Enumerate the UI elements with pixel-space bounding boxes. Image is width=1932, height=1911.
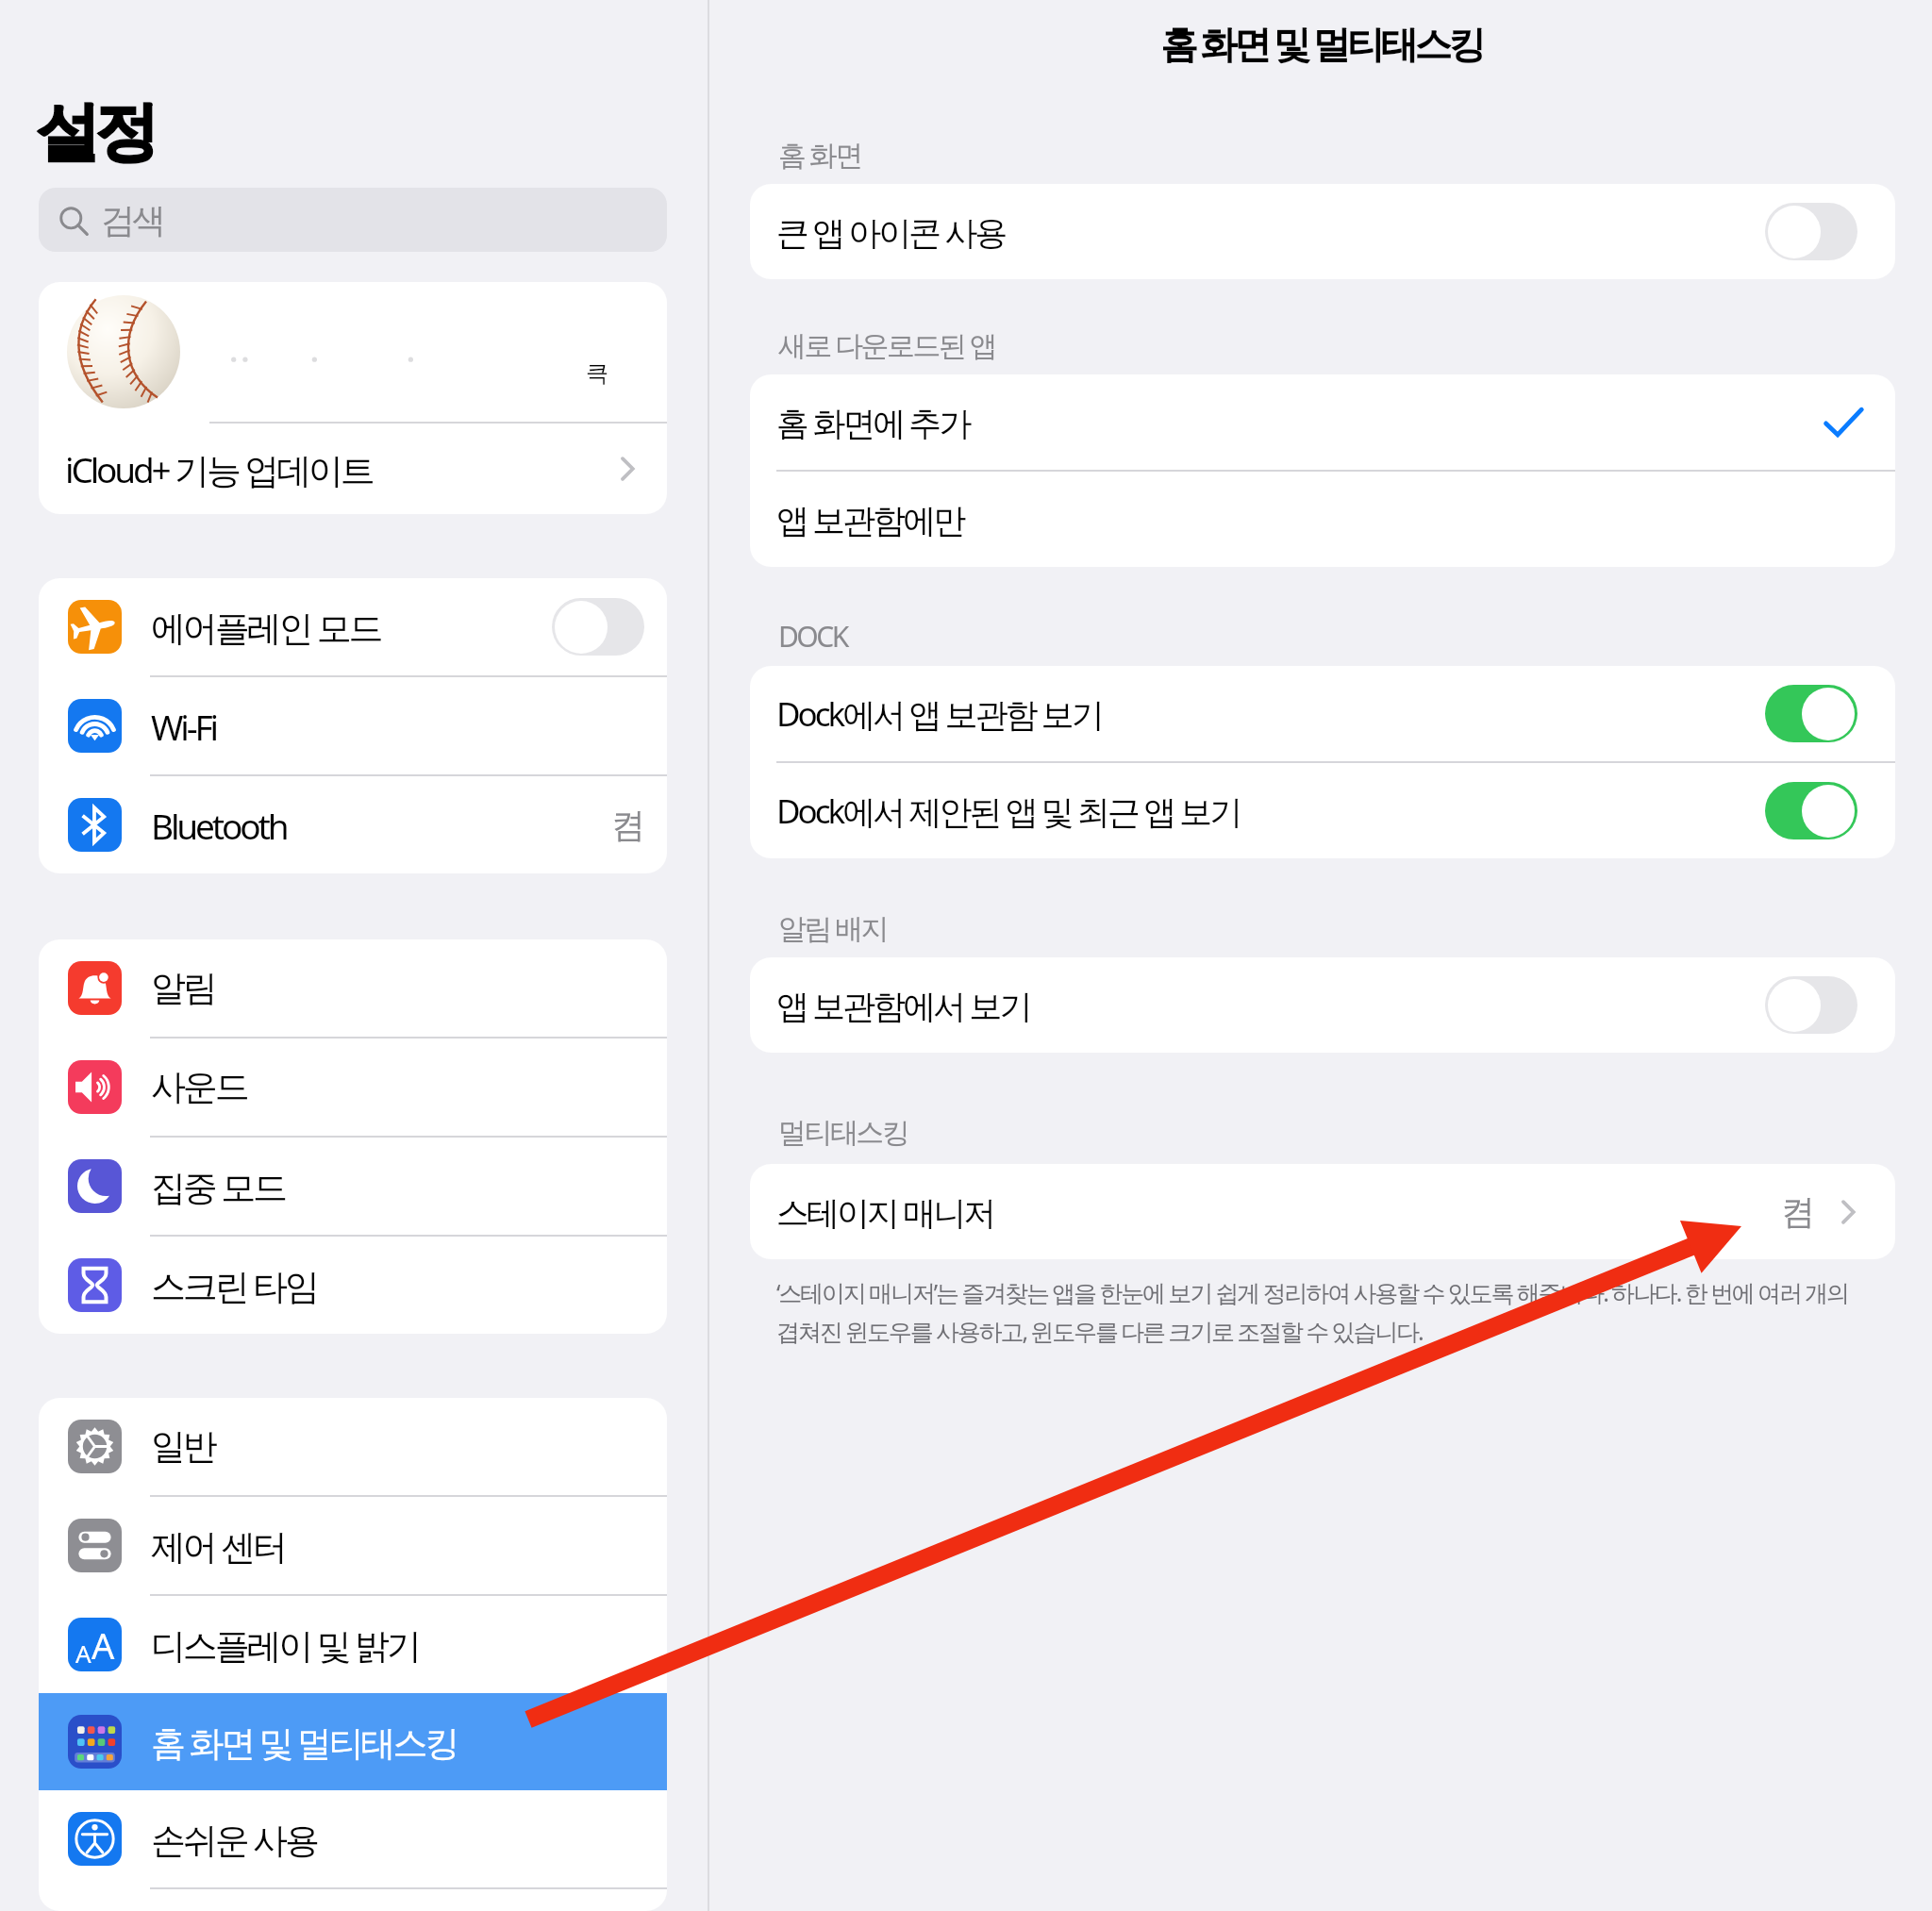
button[interactable]: 홈 화면 및 멀티태스킹 bbox=[39, 1693, 667, 1790]
staticText: 큰 앱 아이콘 사용 bbox=[776, 209, 1006, 255]
button[interactable]: 검색 bbox=[39, 188, 667, 252]
staticText: 앱 보관함에만 bbox=[776, 497, 964, 542]
button[interactable]: 일반 bbox=[39, 1398, 667, 1495]
button[interactable]: 손쉬운 사용 bbox=[39, 1790, 667, 1887]
staticText: 에어플레인 모드 bbox=[151, 603, 381, 651]
button[interactable]: Toggle off bbox=[552, 598, 644, 656]
staticText: 스테이지 매니저 bbox=[776, 1189, 994, 1235]
staticText: 사운드 bbox=[151, 1065, 247, 1109]
button[interactable]: Dock에서 앱 보관함 보기 bbox=[750, 666, 1895, 761]
staticText: iCloud+ 기능 업데이트 bbox=[65, 445, 373, 493]
button[interactable]: 큭 bbox=[39, 282, 667, 422]
staticText: Wi-Fi bbox=[151, 703, 216, 750]
staticText: 홈 화면에 추가 bbox=[776, 400, 970, 445]
staticText: 켬 bbox=[611, 804, 642, 846]
staticText: 제어 센터 bbox=[151, 1521, 285, 1570]
button[interactable]: 에어플레인 모드 bbox=[39, 578, 667, 675]
staticText: 디스플레이 및 밝기 bbox=[151, 1620, 419, 1669]
staticText: 일반 bbox=[151, 1424, 215, 1469]
staticText: 새로 다운로드된 앱 bbox=[778, 325, 996, 364]
staticText: 알림 bbox=[151, 966, 215, 1010]
button[interactable]: Toggle off bbox=[1765, 976, 1857, 1034]
other: Open bbox=[1831, 1195, 1865, 1229]
staticText: 알림 배지 bbox=[778, 908, 888, 947]
button[interactable]: 큰 앱 아이콘 사용 bbox=[750, 184, 1895, 279]
staticText: 앱 보관함에서 보기 bbox=[776, 983, 1030, 1028]
staticText: DOCK bbox=[778, 617, 847, 656]
button[interactable]: Wi-Fi bbox=[39, 677, 667, 774]
staticText: 홈 화면 및 멀티태스킹 bbox=[151, 1718, 458, 1766]
button[interactable]: Toggle on bbox=[1765, 782, 1857, 839]
staticText: 멀티태스킹 bbox=[778, 1115, 908, 1151]
button[interactable]: 사운드 bbox=[39, 1039, 667, 1136]
button[interactable]: 앱 보관함에서 보기 bbox=[750, 957, 1895, 1053]
staticText: 손쉬운 사용 bbox=[151, 1815, 317, 1863]
button[interactable]: 앱 보관함에만 bbox=[750, 472, 1895, 567]
staticText: 켬 bbox=[1781, 1190, 1812, 1233]
button[interactable]: iCloud+ 기능 업데이트 bbox=[39, 424, 667, 514]
button[interactable]: 알림 bbox=[39, 939, 667, 1037]
button[interactable]: 제어 센터 bbox=[39, 1497, 667, 1594]
staticText: 설정 bbox=[36, 92, 155, 174]
staticText: A bbox=[92, 1620, 115, 1670]
staticText: 홈 화면 bbox=[778, 135, 861, 174]
button[interactable]: Dock에서 제안된 앱 및 최근 앱 보기 bbox=[750, 763, 1895, 858]
button[interactable]: 집중 모드 bbox=[39, 1138, 667, 1235]
button[interactable]: A bbox=[39, 1596, 667, 1693]
button[interactable]: Bluetooth bbox=[39, 776, 667, 873]
staticText: A bbox=[75, 1637, 92, 1670]
staticText: ‘스테이지 매니저’는 즐겨찾는 앱을 한눈에 보기 쉽게 정리하여 사용할 수… bbox=[776, 1276, 1848, 1348]
other: Selected bbox=[1822, 401, 1865, 444]
staticText: 스크린 타임 bbox=[151, 1261, 317, 1309]
staticText: 집중 모드 bbox=[151, 1162, 285, 1210]
staticText: Bluetooth bbox=[151, 802, 287, 849]
staticText: 큭 bbox=[586, 359, 607, 388]
staticText: 검색 bbox=[101, 199, 163, 241]
button[interactable]: 스테이지 매니저 bbox=[750, 1164, 1895, 1259]
other: Open bbox=[610, 452, 644, 486]
button[interactable]: Toggle on bbox=[1765, 685, 1857, 742]
button[interactable]: 스크린 타임 bbox=[39, 1237, 667, 1334]
staticText: Dock에서 앱 보관함 보기 bbox=[776, 691, 1102, 737]
button[interactable]: 홈 화면에 추가 bbox=[750, 374, 1895, 470]
staticText: 홈 화면 및 멀티태스킹 bbox=[1160, 17, 1482, 69]
staticText: Dock에서 제안된 앱 및 최근 앱 보기 bbox=[776, 789, 1241, 834]
button[interactable]: Toggle off bbox=[1765, 203, 1857, 260]
